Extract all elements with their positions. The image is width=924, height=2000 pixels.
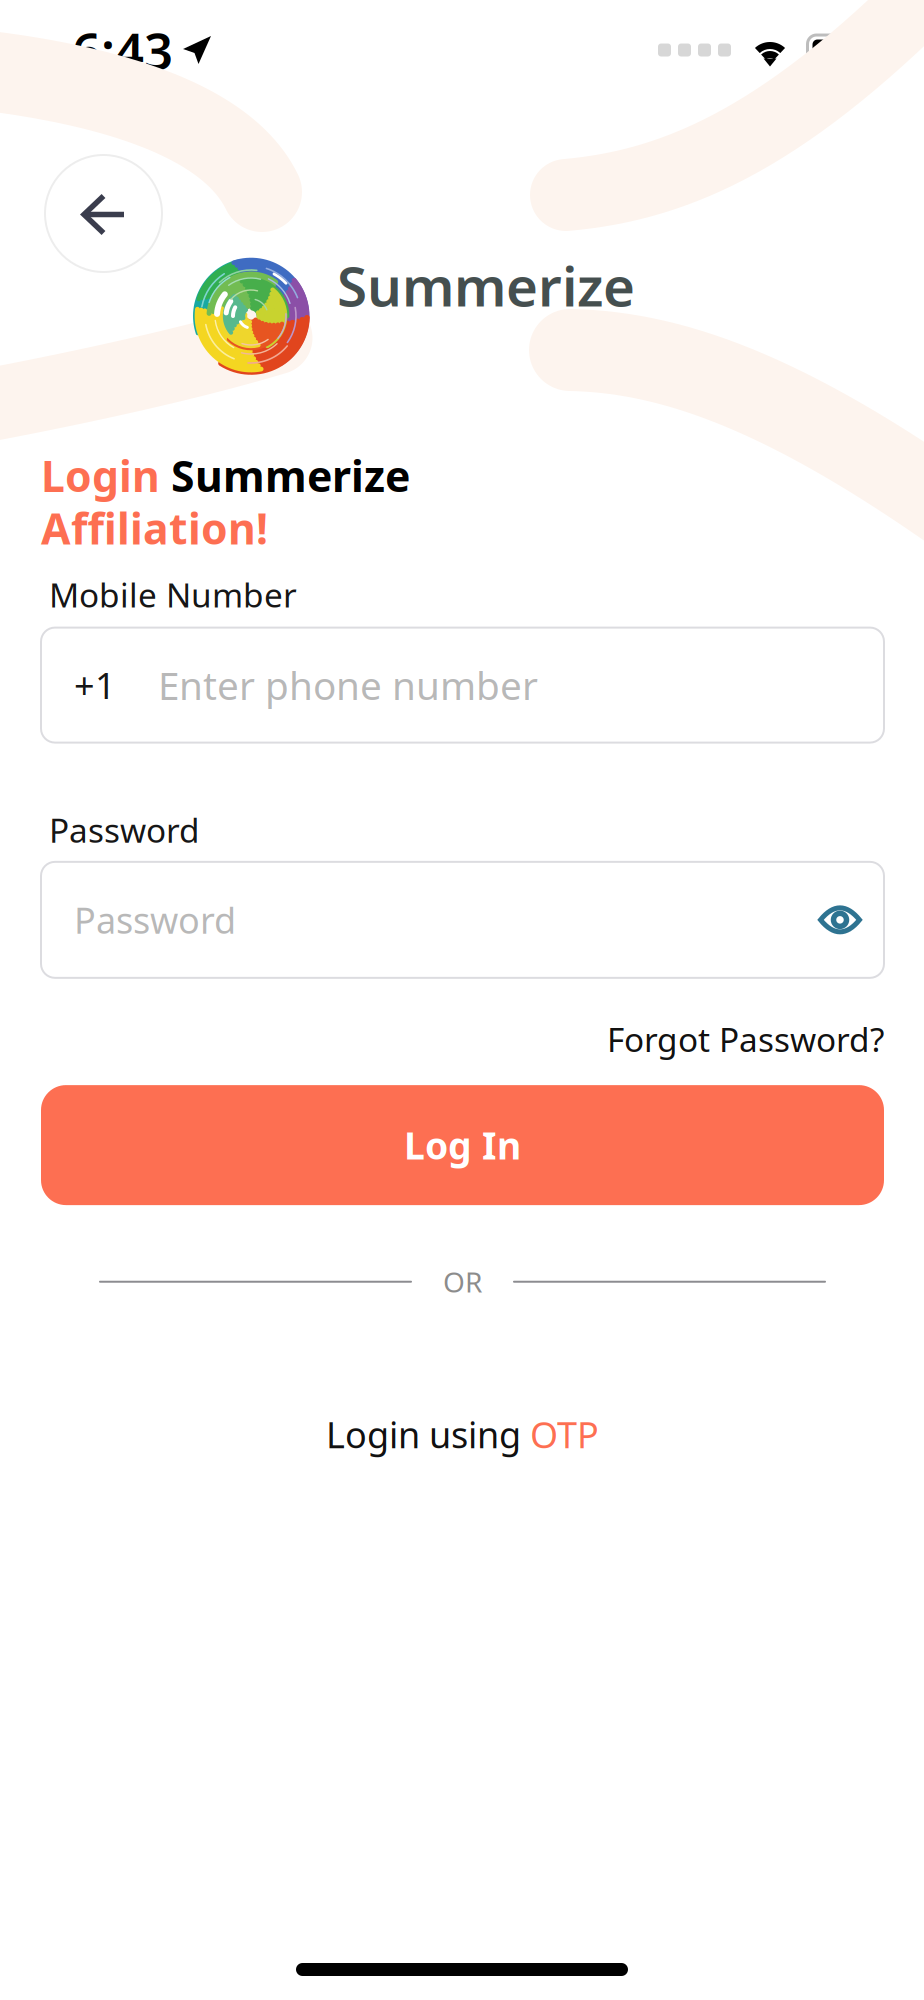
- button[interactable]: Log In: [41, 1085, 884, 1205]
- staticText: Summerize: [160, 447, 410, 504]
- staticText: Summerize: [337, 249, 635, 322]
- staticText: +1: [74, 661, 116, 709]
- staticText: OTP: [530, 1410, 599, 1458]
- staticText: Forgot Password?: [607, 1017, 884, 1061]
- staticText: Login using: [326, 1410, 530, 1458]
- staticText: OR: [443, 1263, 482, 1300]
- staticText: Affiliation!: [41, 500, 268, 556]
- button[interactable]: Show password: [818, 904, 884, 936]
- button[interactable]: Login using: [326, 1410, 599, 1458]
- staticText: Enter phone number: [158, 659, 538, 711]
- staticText: Password: [74, 896, 236, 944]
- staticText: Login: [41, 447, 160, 504]
- staticText: 6:43: [72, 16, 173, 84]
- staticText: Log In: [404, 1120, 521, 1170]
- staticText: Password: [49, 808, 200, 852]
- staticText: Mobile Number: [49, 572, 297, 617]
- button[interactable]: Forgot Password?: [607, 1017, 884, 1061]
- button[interactable]: Back: [45, 155, 162, 272]
